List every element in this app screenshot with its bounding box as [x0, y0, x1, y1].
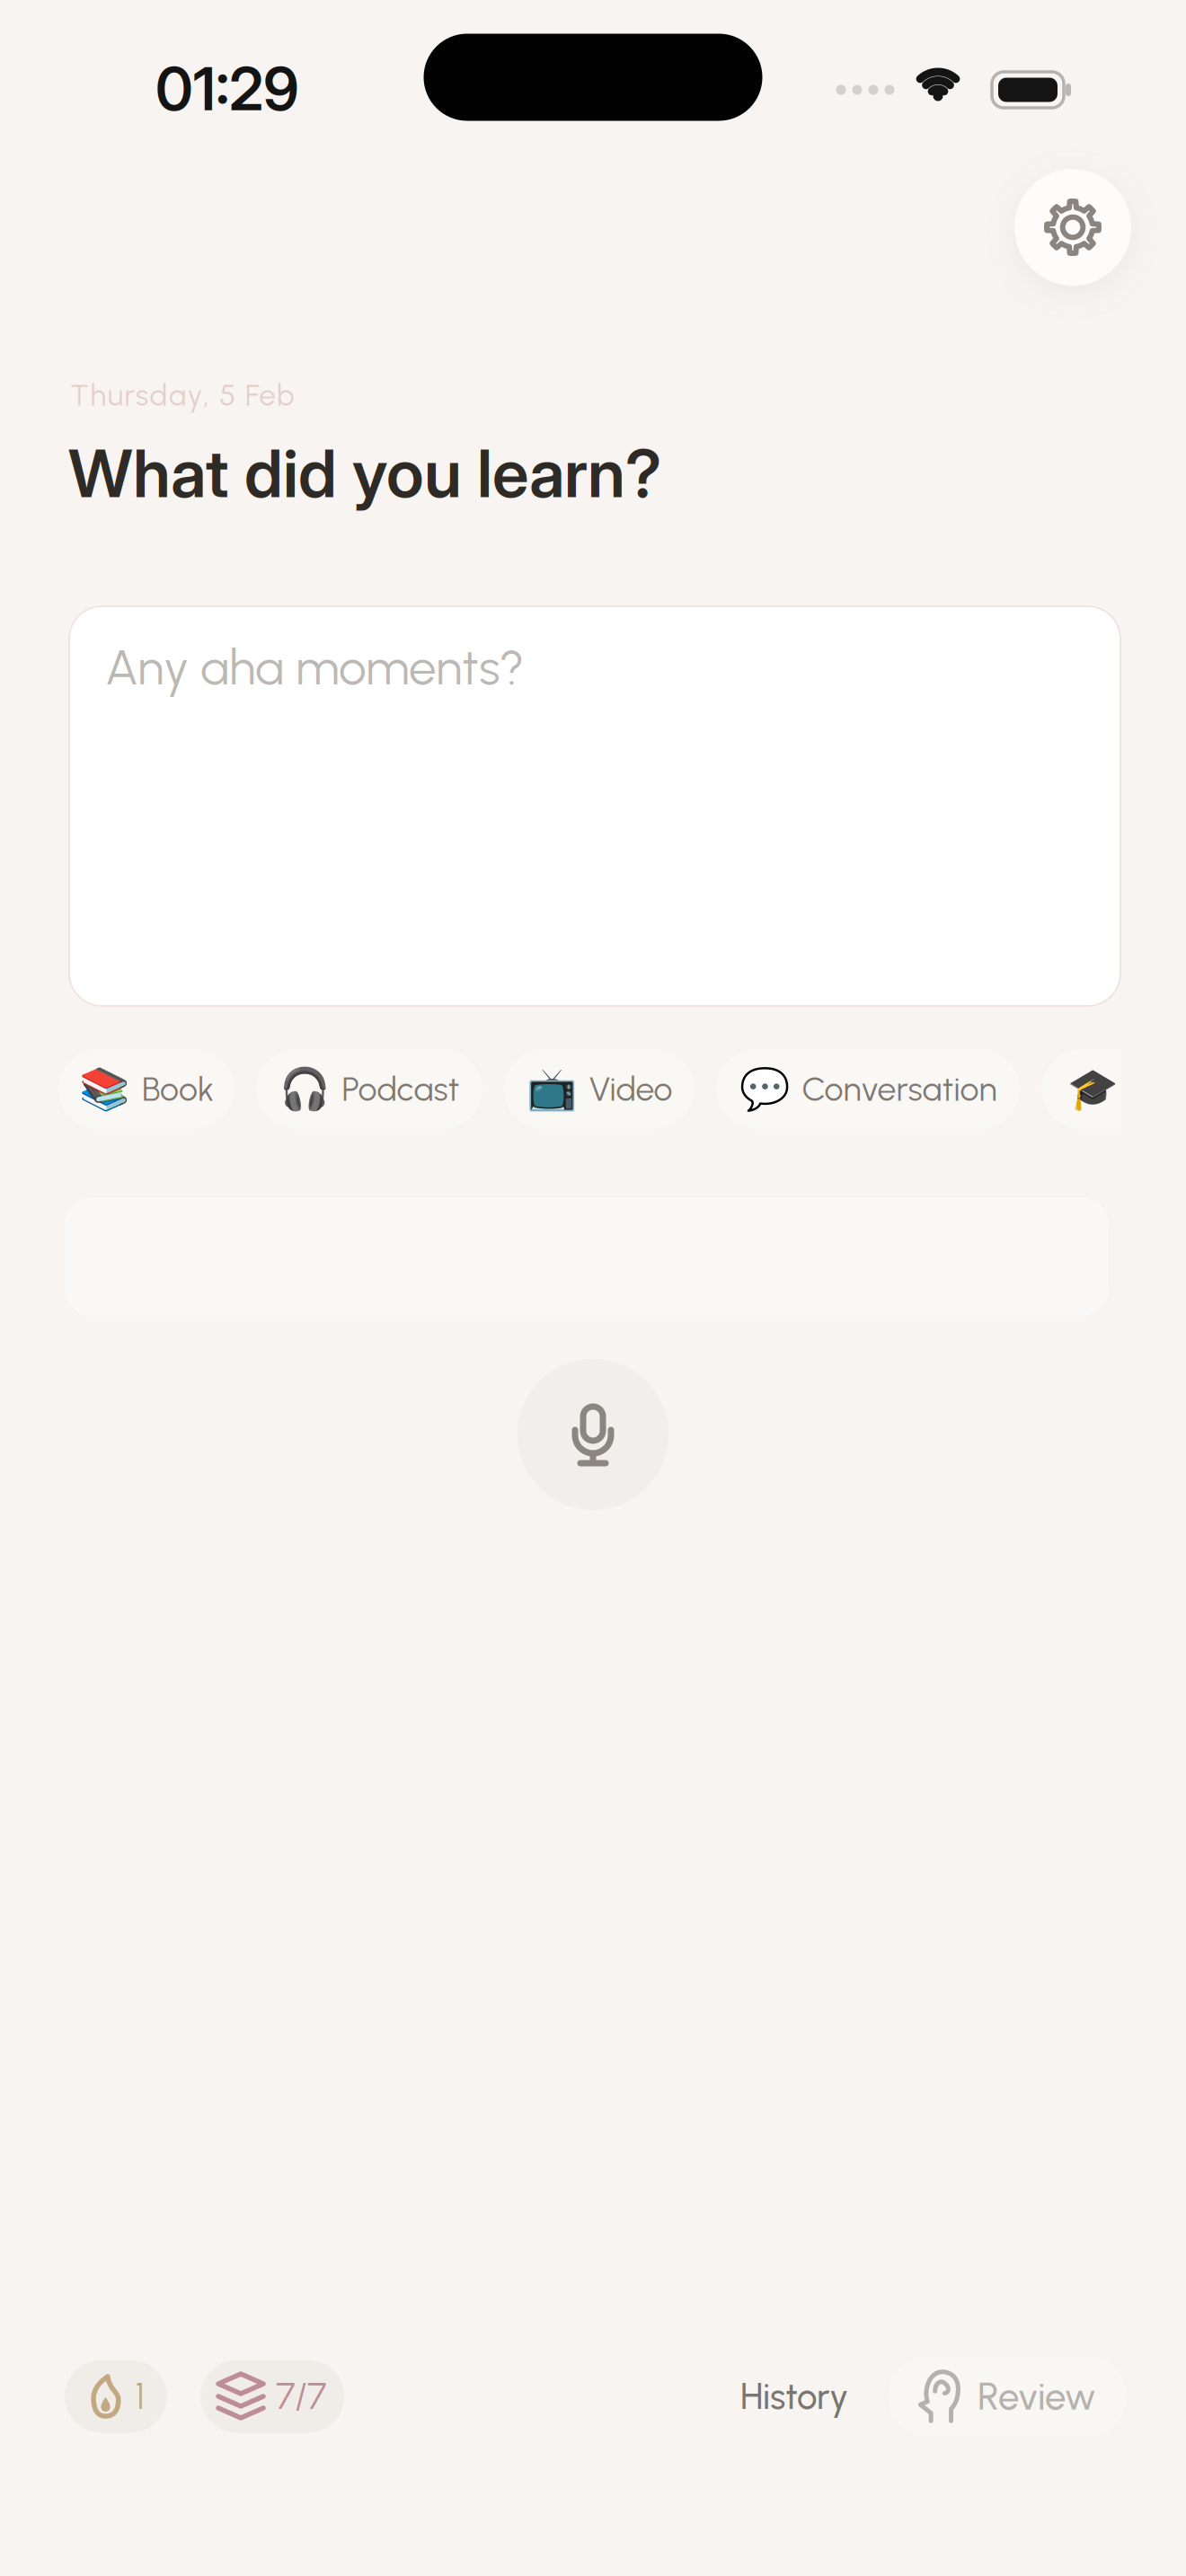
button[interactable]: 📚: [58, 1049, 235, 1129]
staticText: 📚: [79, 1066, 129, 1112]
staticText: Review: [978, 2374, 1096, 2419]
staticText: Thursday, 5 Feb: [70, 378, 295, 413]
button[interactable]: 🎓: [1041, 1049, 1186, 1129]
button[interactable]: 📺: [504, 1049, 695, 1129]
staticText: 7/7: [276, 2375, 326, 2418]
staticText: Video: [589, 1069, 673, 1109]
staticText: 📺: [526, 1066, 576, 1112]
staticText: 01:29: [155, 53, 299, 124]
staticText: 🎓: [1067, 1066, 1117, 1112]
staticText: Any aha moments?: [105, 638, 524, 697]
button[interactable]: Settings: [1014, 169, 1131, 286]
button[interactable]: 💬: [716, 1049, 1020, 1129]
staticText: Conversation: [802, 1069, 997, 1109]
staticText: 🎧: [279, 1066, 329, 1112]
staticText: Book: [142, 1069, 214, 1109]
button[interactable]: Any aha moments?: [68, 605, 1121, 1007]
staticText: 💬: [739, 1066, 789, 1112]
button[interactable]: History: [724, 2357, 864, 2436]
staticText: History: [740, 2375, 848, 2418]
button[interactable]: Review: [888, 2355, 1127, 2438]
button[interactable]: Record: [518, 1359, 668, 1510]
button[interactable]: 🎧: [256, 1049, 482, 1129]
staticText: What did you learn?: [68, 434, 661, 513]
staticText: Podcast: [342, 1069, 460, 1109]
staticText: 1: [135, 2375, 145, 2418]
